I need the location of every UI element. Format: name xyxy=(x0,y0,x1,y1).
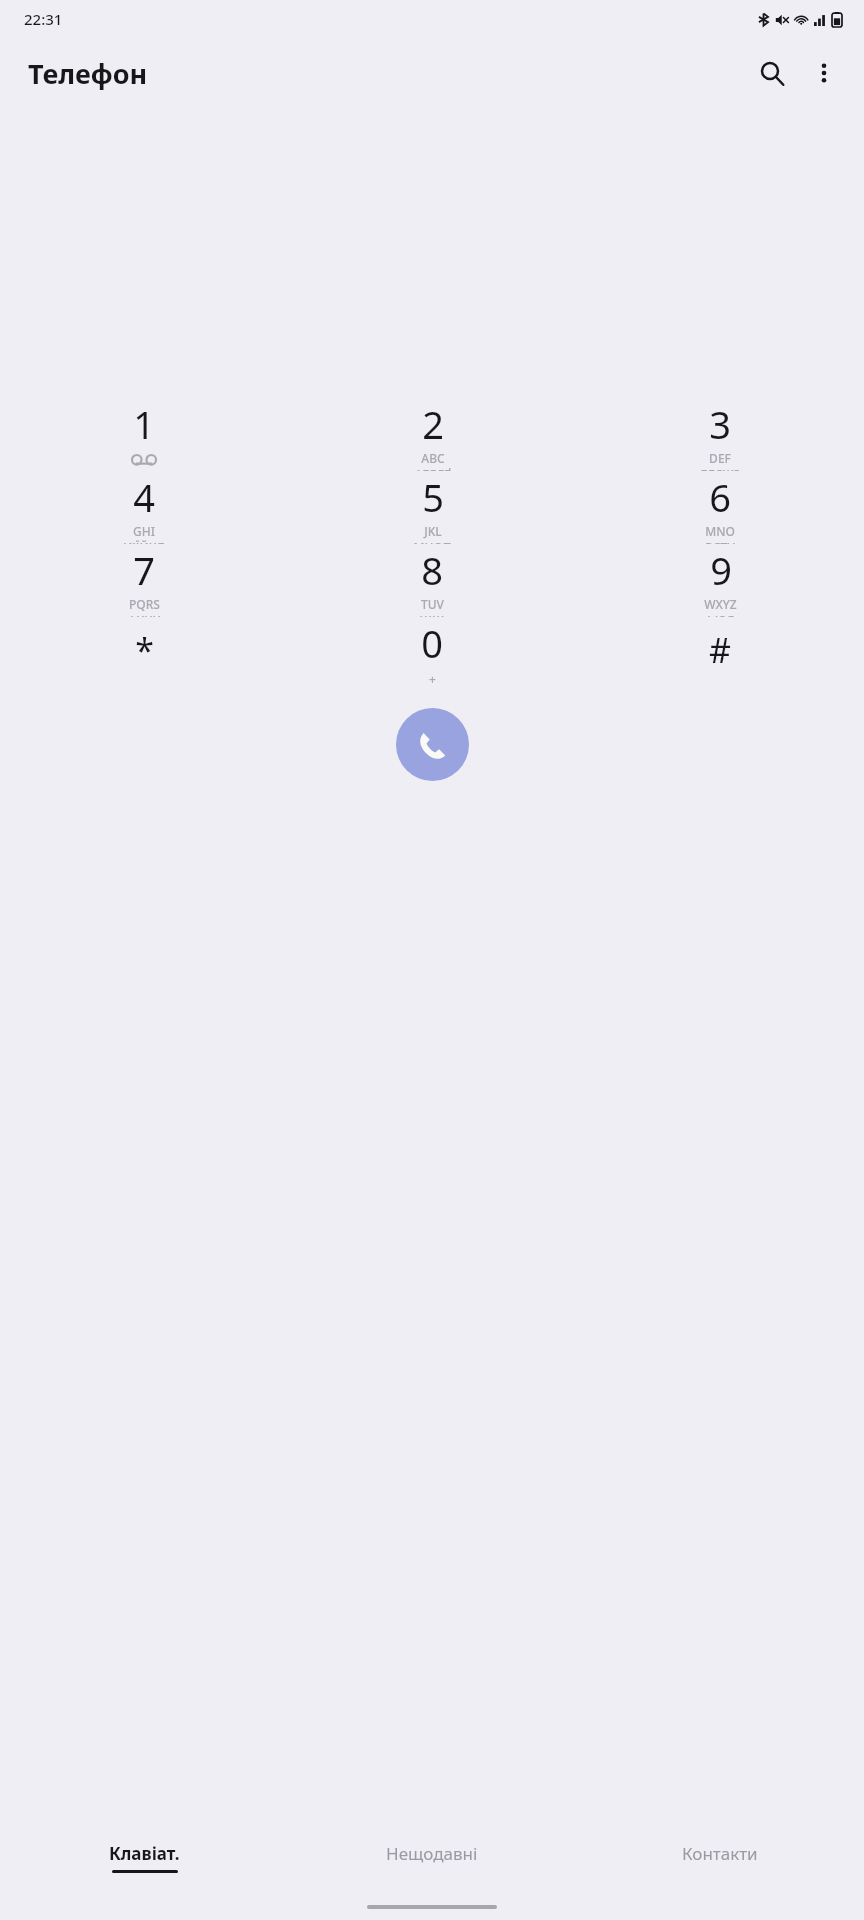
staticText: 7 xyxy=(133,544,155,596)
staticText: АБВГҐ xyxy=(414,466,451,471)
staticText: ABC xyxy=(421,450,445,466)
staticText: Контакти xyxy=(682,1842,758,1865)
staticText: + xyxy=(429,671,436,687)
staticText: WXYZ xyxy=(704,596,737,612)
staticText: PQRS xyxy=(129,596,160,612)
staticText: * xyxy=(135,627,154,673)
staticText: 4 xyxy=(133,471,155,523)
staticText: 2 xyxy=(422,398,444,450)
button[interactable]: 8 xyxy=(288,544,576,617)
staticText: 9 xyxy=(710,544,732,596)
button[interactable]: 4 xyxy=(0,471,288,544)
button[interactable]: Контакти xyxy=(576,1832,864,1894)
staticText: 0 xyxy=(421,617,443,669)
button[interactable]: 7 xyxy=(0,544,288,617)
staticText: GHI xyxy=(133,523,155,539)
staticText: # xyxy=(709,627,731,673)
button[interactable]: 1 xyxy=(0,398,288,471)
staticText: РСТУ xyxy=(705,539,735,544)
button[interactable]: 3 xyxy=(576,398,864,471)
staticText: ЬЮЯ xyxy=(707,612,735,617)
staticText: 1 xyxy=(133,398,155,450)
staticText: Нещодавні xyxy=(386,1842,478,1865)
staticText: МНОП xyxy=(413,539,452,544)
button[interactable]: * xyxy=(0,617,288,690)
staticText: 5 xyxy=(422,471,444,523)
button[interactable]: Нещодавні xyxy=(288,1832,576,1894)
button[interactable]: 0 xyxy=(288,617,576,690)
button[interactable]: 9 xyxy=(576,544,864,617)
staticText: 3 xyxy=(709,398,731,450)
staticText: Клавіат. xyxy=(109,1842,180,1865)
staticText: ШЩ xyxy=(419,612,445,617)
button[interactable]: More options xyxy=(798,47,850,99)
staticText: Телефон xyxy=(28,55,148,92)
button[interactable]: Search xyxy=(746,47,798,99)
staticText: DEF xyxy=(709,450,731,466)
staticText: JKL xyxy=(424,523,442,539)
staticText: 6 xyxy=(709,471,731,523)
button[interactable]: 2 xyxy=(288,398,576,471)
staticText: ДЕЄЖЗ xyxy=(699,466,741,471)
staticText: 8 xyxy=(421,544,443,596)
button[interactable]: 6 xyxy=(576,471,864,544)
staticText: ФХЦЧ xyxy=(127,612,161,617)
button[interactable]: Клавіат. xyxy=(0,1832,288,1894)
staticText: TUV xyxy=(421,596,444,612)
button[interactable]: Call xyxy=(396,708,469,781)
button[interactable]: 5 xyxy=(288,471,576,544)
staticText: MNO xyxy=(705,523,735,539)
staticText: ИІЇЙКЛ xyxy=(123,539,165,544)
button[interactable]: # xyxy=(576,617,864,690)
staticText: 22:31 xyxy=(24,9,63,29)
